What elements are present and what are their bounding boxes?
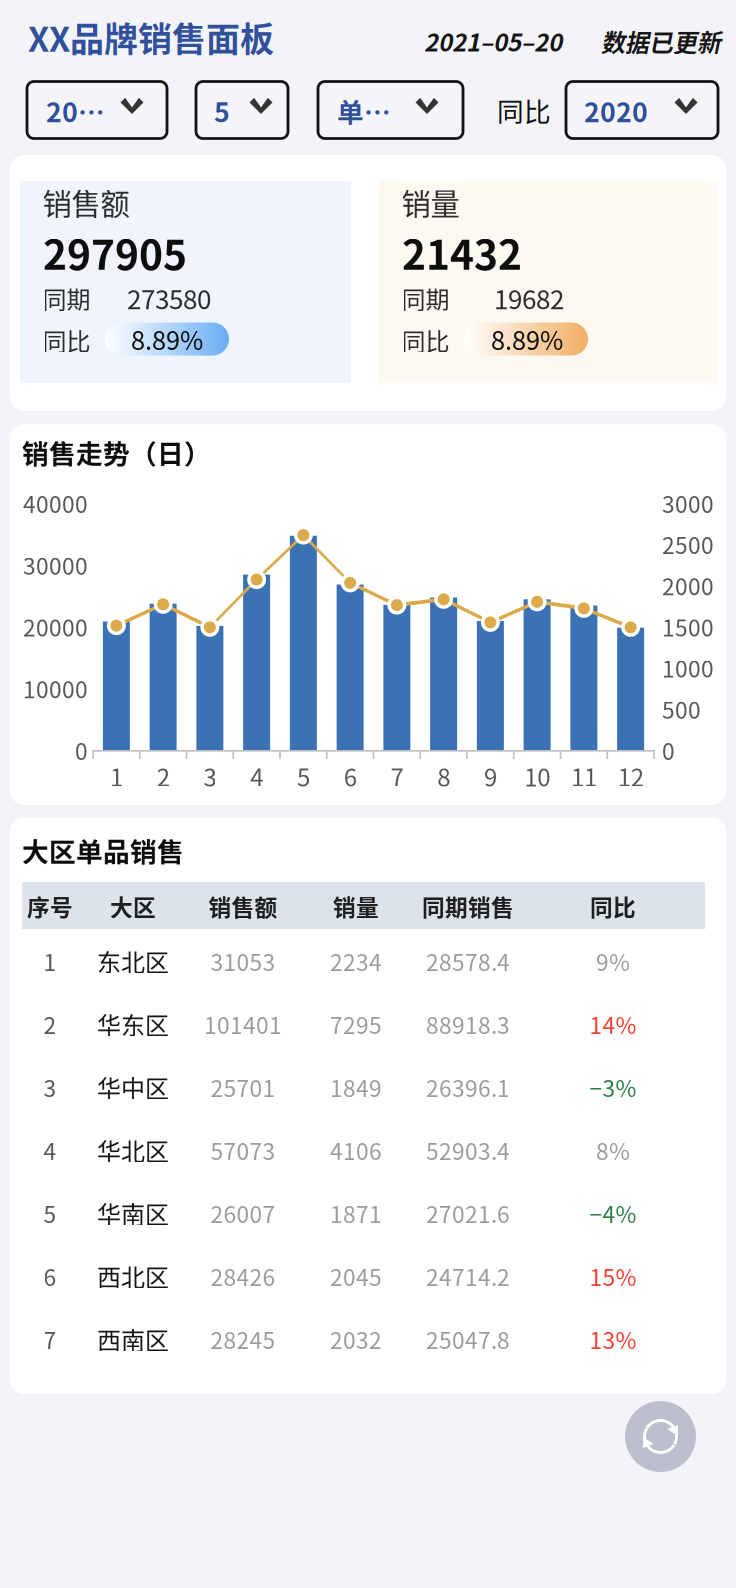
staticText: 序号 xyxy=(27,890,73,922)
staticText: 30000 xyxy=(23,548,88,581)
staticText: XX品牌销售面板 xyxy=(28,12,274,62)
staticText: 15% xyxy=(589,1260,636,1292)
staticText: 52903.4 xyxy=(426,1134,510,1166)
staticText: 20000 xyxy=(23,610,88,643)
staticText: 华北区 xyxy=(97,1133,169,1167)
staticText: 4 xyxy=(43,1134,56,1166)
button[interactable]: 5 xyxy=(196,81,288,138)
staticText: 1 xyxy=(43,945,56,977)
staticText: 销售走势（日） xyxy=(22,433,211,471)
staticText: 273580 xyxy=(127,279,211,317)
staticText: 2500 xyxy=(662,528,714,561)
staticText: 8% xyxy=(596,1134,630,1166)
staticText: 26396.1 xyxy=(426,1071,510,1103)
staticText: 2234 xyxy=(330,945,382,977)
staticText: 西北区 xyxy=(97,1259,169,1293)
staticText: 1500 xyxy=(662,610,714,643)
staticText: 6 xyxy=(43,1260,56,1292)
staticText: 500 xyxy=(662,692,701,725)
staticText: 7295 xyxy=(330,1008,382,1040)
staticText: 2045 xyxy=(330,1260,382,1292)
staticText: −3% xyxy=(589,1071,636,1103)
staticText: 25047.8 xyxy=(426,1323,510,1355)
staticText: 同比 xyxy=(42,323,90,357)
staticText: 24714.2 xyxy=(426,1260,510,1292)
button[interactable]: 单… xyxy=(318,81,463,138)
staticText: 2 xyxy=(43,1008,56,1040)
button[interactable]: 刷新 xyxy=(625,1401,696,1472)
staticText: 1849 xyxy=(330,1071,382,1103)
staticText: 11 xyxy=(571,759,597,793)
staticText: 3000 xyxy=(662,487,714,519)
staticText: 26007 xyxy=(210,1197,275,1229)
staticText: 25701 xyxy=(210,1071,275,1103)
staticText: 大区单品销售 xyxy=(22,831,184,869)
staticText: 8 xyxy=(437,759,450,793)
staticText: 华南区 xyxy=(97,1196,169,1230)
staticText: 12 xyxy=(618,759,644,793)
staticText: 数据已更新 xyxy=(601,24,721,58)
staticText: 同比 xyxy=(497,91,551,129)
staticText: 40000 xyxy=(23,487,88,519)
staticText: 27021.6 xyxy=(426,1197,510,1229)
staticText: 10 xyxy=(524,759,550,793)
staticText: 9 xyxy=(484,759,497,793)
staticText: 销售额 xyxy=(42,181,129,223)
button[interactable]: 20… xyxy=(27,81,167,138)
staticText: 2000 xyxy=(662,569,714,602)
staticText: 东北区 xyxy=(97,944,169,978)
staticText: 28426 xyxy=(210,1260,275,1292)
staticText: 华中区 xyxy=(97,1070,169,1104)
staticText: 0 xyxy=(75,734,88,766)
staticText: 2020 xyxy=(584,91,648,130)
staticText: 14% xyxy=(589,1008,636,1040)
staticText: 101401 xyxy=(204,1008,282,1040)
staticText: 4106 xyxy=(330,1134,382,1166)
staticText: 7 xyxy=(390,759,403,793)
staticText: 销售额 xyxy=(208,890,277,922)
staticText: 1 xyxy=(110,759,123,793)
staticText: 4 xyxy=(250,759,263,793)
staticText: 同期销售 xyxy=(422,890,514,922)
staticText: 1871 xyxy=(330,1197,382,1229)
staticText: 3 xyxy=(43,1071,56,1103)
staticText: 6 xyxy=(344,759,357,793)
staticText: 0 xyxy=(662,734,675,766)
staticText: 10000 xyxy=(23,672,88,705)
staticText: 同比 xyxy=(401,323,449,357)
staticText: 2021–05–20 xyxy=(424,24,562,58)
staticText: 西南区 xyxy=(97,1322,169,1356)
staticText: 同比 xyxy=(590,890,636,922)
staticText: 28245 xyxy=(210,1323,275,1355)
staticText: 销量 xyxy=(333,890,379,922)
staticText: 8.89% xyxy=(491,321,563,357)
staticText: 3 xyxy=(203,759,216,793)
staticText: 21432 xyxy=(402,223,522,281)
staticText: 28578.4 xyxy=(426,945,510,977)
staticText: −4% xyxy=(589,1197,636,1229)
staticText: 1000 xyxy=(662,651,714,684)
staticText: 57073 xyxy=(210,1134,275,1166)
staticText: 2032 xyxy=(330,1323,382,1355)
staticText: 9% xyxy=(596,945,630,977)
staticText: 同期 xyxy=(401,281,449,315)
staticText: 8.89% xyxy=(131,321,203,357)
staticText: 销量 xyxy=(401,181,459,223)
staticText: 华东区 xyxy=(97,1007,169,1041)
staticText: 2 xyxy=(157,759,170,793)
staticText: 13% xyxy=(589,1323,636,1355)
staticText: 297905 xyxy=(43,223,187,281)
staticText: 大区 xyxy=(110,890,156,922)
staticText: 5 xyxy=(297,759,310,793)
staticText: 20… xyxy=(46,91,105,130)
staticText: 5 xyxy=(214,91,230,130)
staticText: 同期 xyxy=(42,281,90,315)
staticText: 88918.3 xyxy=(426,1008,510,1040)
button[interactable]: 2020 xyxy=(566,81,718,138)
staticText: 5 xyxy=(43,1197,56,1229)
staticText: 7 xyxy=(43,1323,56,1355)
staticText: 单… xyxy=(337,91,391,130)
staticText: 31053 xyxy=(210,945,275,977)
staticText: 19682 xyxy=(494,279,564,317)
